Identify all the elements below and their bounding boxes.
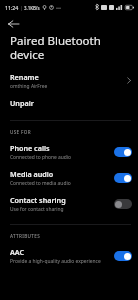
staticText: AAC: [10, 247, 25, 257]
button[interactable]: Rename: [0, 68, 138, 93]
staticText: Use for contact sharing: [10, 206, 64, 213]
staticText: |: [20, 4, 23, 11]
staticText: Media audio: [10, 169, 54, 179]
button[interactable]: Unpair: [0, 93, 138, 113]
staticText: 3.1KB/s: [24, 5, 40, 11]
staticText: Paired Bluetooth device: [10, 33, 114, 62]
staticText: USE FOR: [10, 129, 32, 135]
staticText: 11:24: [5, 4, 19, 11]
staticText: Rename: [10, 72, 39, 82]
button[interactable]: Back: [5, 15, 22, 32]
button[interactable]: Contact sharing switch: [114, 199, 132, 209]
staticText: Contact sharing: [10, 195, 66, 205]
staticText: Provide a high-quality audio experience: [10, 258, 101, 265]
staticText: ATTRIBUTES: [10, 233, 41, 239]
button[interactable]: Phone calls: [0, 139, 138, 165]
button[interactable]: AAC: [0, 243, 138, 269]
button[interactable]: Media audio: [0, 165, 138, 191]
staticText: Connected to phone audio: [10, 154, 72, 161]
staticText: Unpair: [10, 98, 34, 108]
button[interactable]: AAC switch: [114, 251, 132, 261]
staticText: Connected to media audio: [10, 180, 71, 187]
button[interactable]: Media audio switch: [114, 173, 132, 183]
staticText: Phone calls: [10, 143, 50, 153]
button[interactable]: Phone calls switch: [114, 147, 132, 157]
button[interactable]: Contact sharing: [0, 191, 138, 217]
staticText: omthing AirFree: [10, 83, 48, 90]
